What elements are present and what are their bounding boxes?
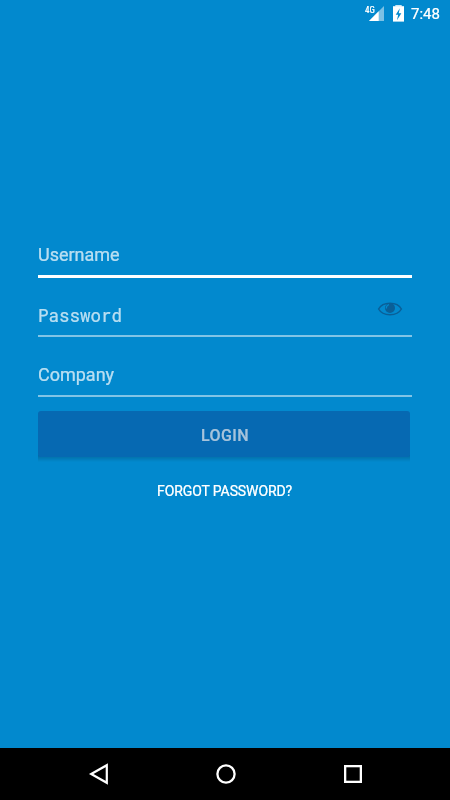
button[interactable]: Password xyxy=(38,289,412,337)
staticText: LOGIN xyxy=(201,426,249,445)
staticText: 7:48 xyxy=(411,5,440,23)
staticText: Password xyxy=(38,304,123,327)
button[interactable]: FORGOT PASSWORD? xyxy=(147,478,303,504)
staticText: 4G xyxy=(365,5,375,16)
button[interactable]: LOGIN xyxy=(38,411,410,457)
button[interactable]: Recents xyxy=(329,750,377,798)
button[interactable]: Username xyxy=(38,230,412,278)
button[interactable]: Company xyxy=(38,349,412,397)
button[interactable]: Home xyxy=(202,750,250,798)
staticText: Username xyxy=(38,244,120,265)
button[interactable]: Back xyxy=(75,750,123,798)
staticText: FORGOT PASSWORD? xyxy=(157,483,293,499)
staticText: Company xyxy=(38,364,115,385)
button[interactable]: Show password xyxy=(373,292,407,326)
